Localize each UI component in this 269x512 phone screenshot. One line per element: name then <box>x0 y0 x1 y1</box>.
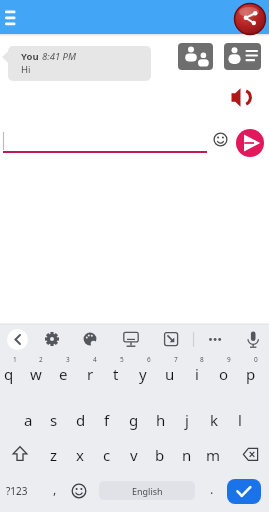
staticText: d <box>76 410 86 430</box>
staticText: r <box>87 364 94 384</box>
button[interactable]: l <box>227 409 253 431</box>
staticText: c <box>103 445 111 465</box>
button[interactable]: e <box>50 363 76 385</box>
button[interactable]: ?123 <box>0 481 34 501</box>
button[interactable] <box>227 479 261 504</box>
staticText: j <box>185 410 189 430</box>
button[interactable]: i <box>184 363 210 385</box>
staticText: g <box>129 410 139 430</box>
staticText: You <box>21 50 42 63</box>
button[interactable] <box>236 129 264 157</box>
button[interactable]: . <box>204 479 220 499</box>
button[interactable] <box>7 329 28 350</box>
staticText: z <box>50 445 58 465</box>
button[interactable]: h <box>148 409 174 431</box>
staticText: v <box>130 445 138 465</box>
button[interactable]: j <box>174 409 200 431</box>
staticText: w <box>30 364 42 384</box>
staticText: s <box>50 410 58 430</box>
staticText: l <box>238 410 242 430</box>
button[interactable]: q <box>0 363 22 385</box>
staticText: 8 <box>200 355 204 364</box>
staticText: q <box>4 364 14 384</box>
button[interactable]: u <box>157 363 183 385</box>
staticText: e <box>59 364 68 384</box>
button[interactable]: m <box>200 444 226 466</box>
staticText: 8:41 PM <box>42 50 76 63</box>
staticText: h <box>156 410 166 430</box>
staticText: u <box>165 364 175 384</box>
staticText: 5 <box>120 355 124 364</box>
staticText: 2 <box>39 355 43 364</box>
staticText: i <box>195 364 199 384</box>
button[interactable]: w <box>23 363 49 385</box>
staticText: , <box>53 481 57 498</box>
staticText: 7 <box>174 355 178 364</box>
staticText: ?123 <box>6 484 28 498</box>
button[interactable]: n <box>174 444 200 466</box>
staticText: o <box>219 364 229 384</box>
staticText: 0 <box>254 355 258 364</box>
button[interactable] <box>0 0 269 34</box>
staticText: 1 <box>13 355 17 364</box>
staticText: p <box>246 364 256 384</box>
button[interactable]: r <box>77 363 103 385</box>
staticText: English <box>132 485 163 497</box>
staticText: 3 <box>66 355 70 364</box>
button[interactable]: z <box>41 444 67 466</box>
button[interactable]: o <box>211 363 237 385</box>
button[interactable]: t <box>103 363 129 385</box>
button[interactable]: p <box>238 363 264 385</box>
staticText: 6 <box>147 355 151 364</box>
button[interactable]: , <box>47 479 63 499</box>
staticText: n <box>182 445 192 465</box>
staticText: b <box>155 445 165 465</box>
button[interactable] <box>178 43 213 70</box>
staticText: k <box>210 410 219 430</box>
button[interactable]: g <box>121 409 147 431</box>
button[interactable]: s <box>41 409 67 431</box>
staticText: f <box>104 410 110 430</box>
staticText: y <box>139 364 147 384</box>
staticText: 4 <box>93 355 97 364</box>
button[interactable] <box>224 43 261 70</box>
button[interactable]: d <box>68 409 94 431</box>
staticText: . <box>210 481 214 498</box>
staticText: Hi <box>21 63 31 76</box>
button[interactable]: v <box>121 444 147 466</box>
staticText: 9 <box>227 355 231 364</box>
button[interactable]: c <box>94 444 120 466</box>
staticText: a <box>24 410 33 430</box>
staticText: t <box>113 364 119 384</box>
button[interactable]: y <box>130 363 156 385</box>
button[interactable]: x <box>67 444 93 466</box>
button[interactable]: f <box>94 409 120 431</box>
button[interactable] <box>99 481 195 500</box>
staticText: m <box>206 445 221 465</box>
button[interactable] <box>8 46 151 81</box>
button[interactable]: k <box>201 409 227 431</box>
staticText: x <box>76 445 84 465</box>
button[interactable]: a <box>15 409 41 431</box>
button[interactable]: b <box>147 444 173 466</box>
